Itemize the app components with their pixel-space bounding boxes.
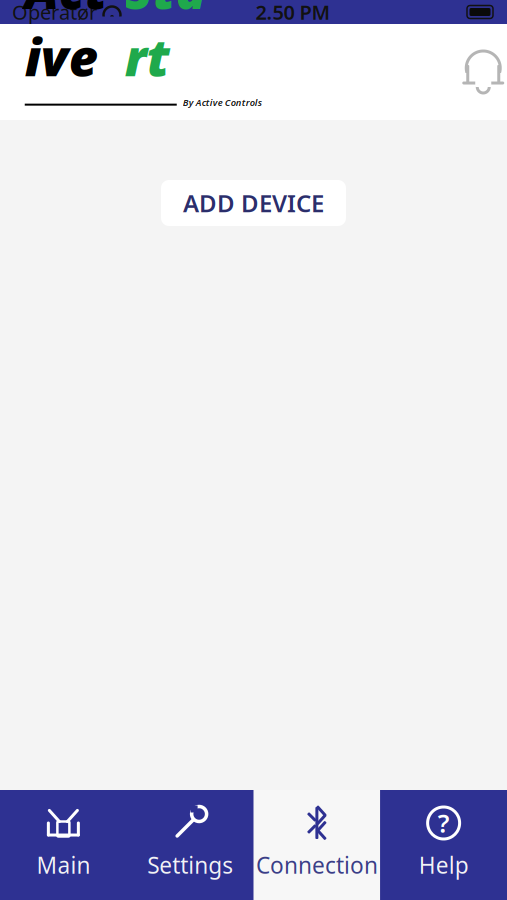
staticText: Main	[36, 850, 90, 880]
button[interactable]: ADD DEVICE	[161, 180, 346, 226]
staticText: Start	[125, 0, 224, 90]
button[interactable]: ?	[380, 790, 507, 900]
button[interactable]: Notifications	[452, 41, 507, 103]
button[interactable]: Main	[0, 790, 127, 900]
button[interactable]: Settings	[127, 790, 254, 900]
staticText: ADD DEVICE	[183, 187, 324, 219]
staticText: 2.50 PM	[255, 0, 330, 25]
staticText: Connection	[256, 850, 378, 880]
staticText: Help	[419, 850, 469, 880]
staticText: By Active Controls	[183, 96, 262, 109]
staticText: Operatør	[12, 0, 97, 25]
staticText: ?	[438, 806, 450, 840]
staticText: Active	[25, 0, 125, 90]
staticText: Settings	[147, 850, 233, 880]
button[interactable]: Connection	[253, 790, 380, 900]
